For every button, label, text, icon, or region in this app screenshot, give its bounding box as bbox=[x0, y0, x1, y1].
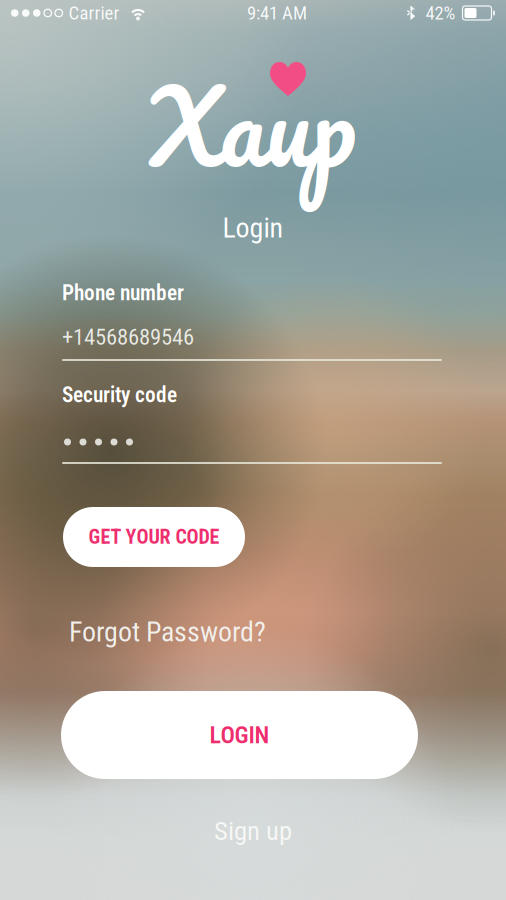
staticText: Security code bbox=[62, 382, 177, 407]
button[interactable]: GET YOUR CODE bbox=[63, 507, 245, 567]
button[interactable]: LOGIN bbox=[61, 691, 418, 779]
staticText: Carrier bbox=[68, 2, 119, 24]
staticText: 42% bbox=[425, 2, 455, 24]
staticText: 9:41 AM bbox=[247, 2, 307, 24]
staticText: Sign up bbox=[214, 815, 292, 847]
staticText: LOGIN bbox=[209, 721, 269, 749]
button[interactable]: Forgot Password? bbox=[69, 617, 299, 647]
staticText: Forgot Password? bbox=[69, 616, 266, 648]
button[interactable]: Sign up bbox=[190, 816, 316, 846]
staticText: GET YOUR CODE bbox=[88, 525, 219, 549]
staticText: Xaup bbox=[150, 38, 356, 212]
staticText: Phone number bbox=[62, 280, 184, 305]
staticText: Login bbox=[222, 212, 283, 244]
staticText: +14568689546 bbox=[62, 324, 194, 350]
